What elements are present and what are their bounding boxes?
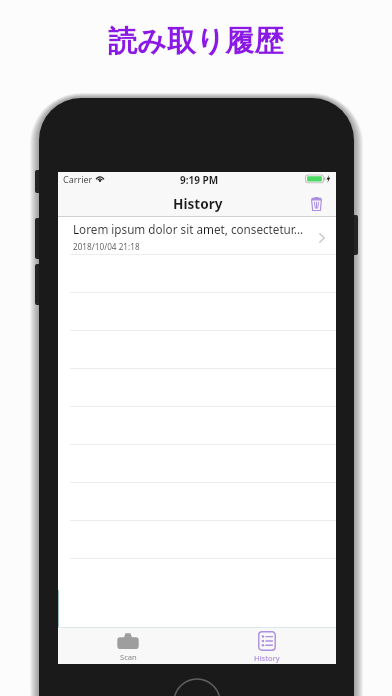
staticText: History xyxy=(173,194,223,213)
staticText: 2018/10/04 21:18 xyxy=(73,241,140,252)
button[interactable]: Delete all history xyxy=(304,193,326,215)
staticText: Scan xyxy=(120,652,137,662)
button[interactable]: Lorem ipsum dolor sit amet, consectetur.… xyxy=(58,217,336,255)
staticText: 読み取り履歴 xyxy=(108,23,284,60)
staticText: History xyxy=(254,653,280,663)
staticText: 9:19 PM xyxy=(180,173,219,187)
button[interactable]: Scan xyxy=(58,628,197,664)
button[interactable]: History xyxy=(197,628,336,664)
staticText: Lorem ipsum dolor sit amet, consectetur.… xyxy=(73,221,313,237)
staticText: Carrier xyxy=(63,173,93,185)
